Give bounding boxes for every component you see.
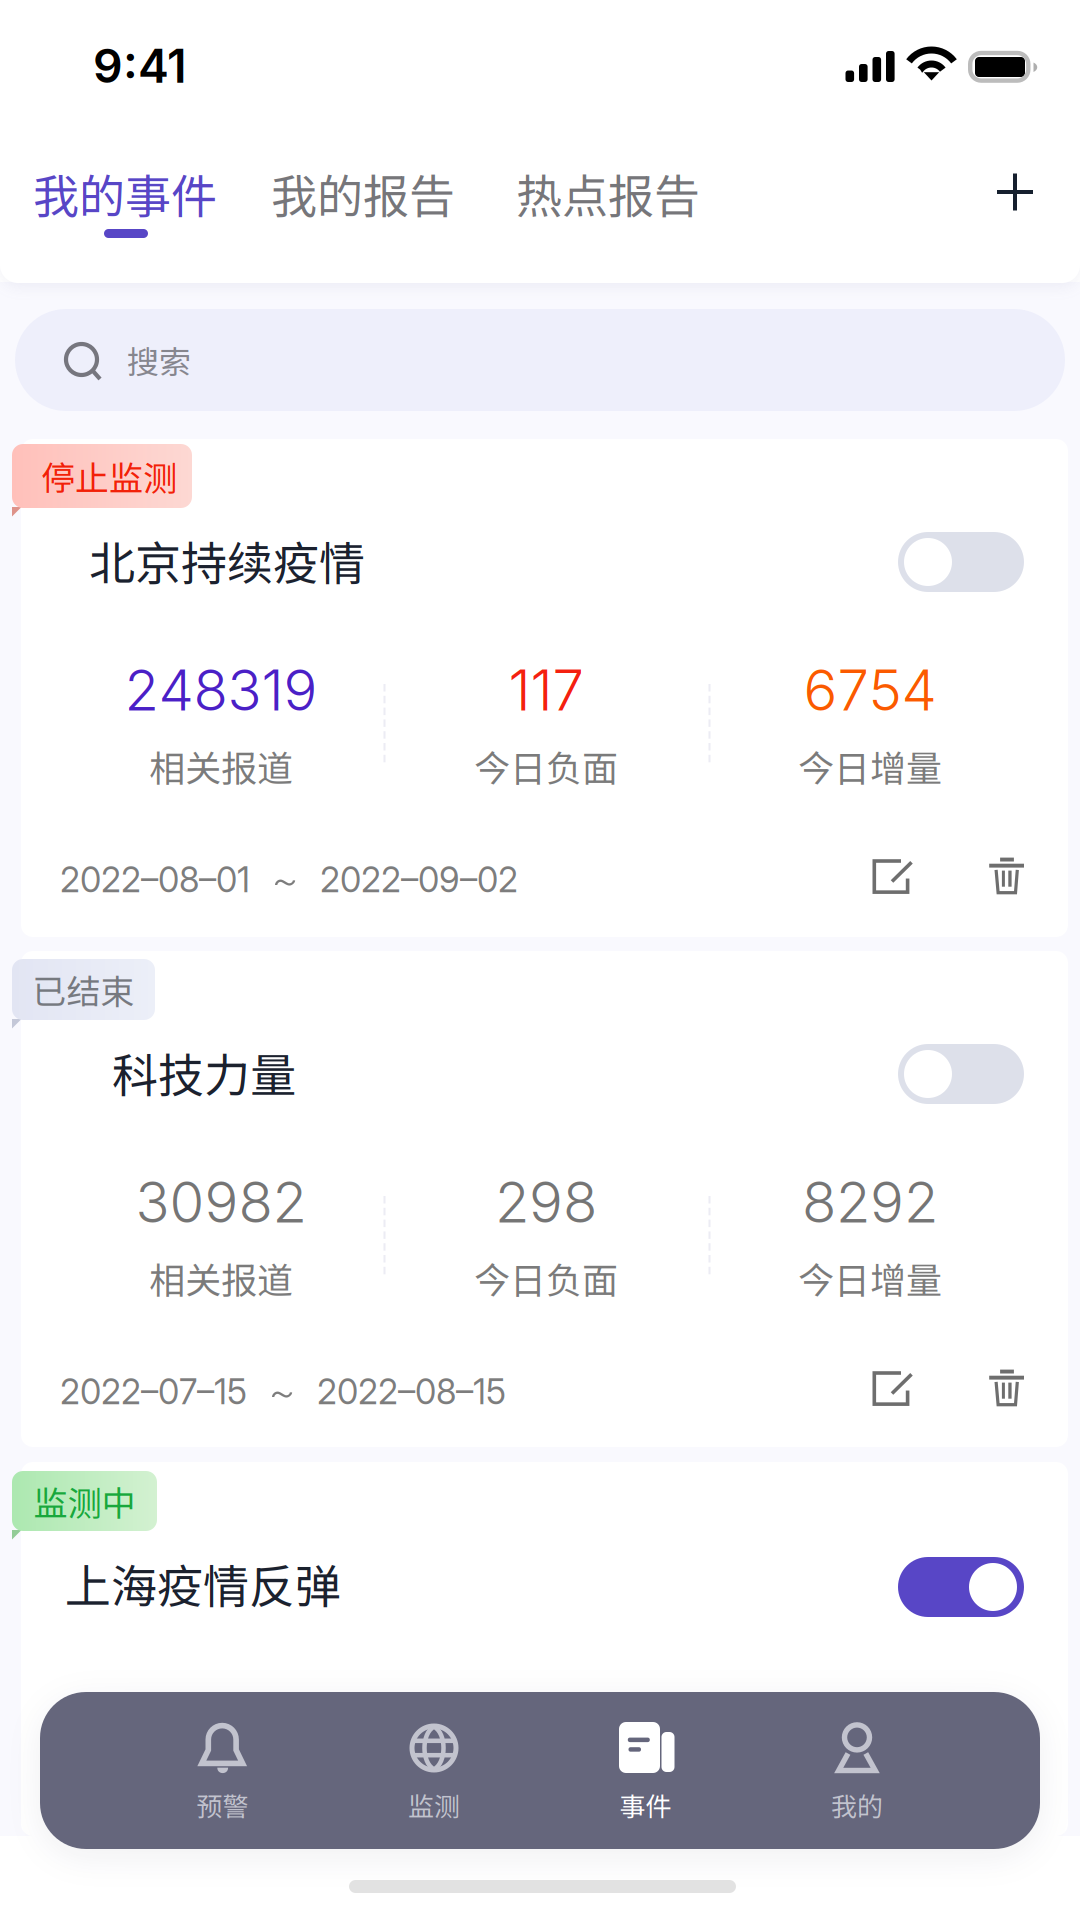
staticText: 我的 [831,1786,883,1824]
staticText: 上海疫情反弹 [65,1550,341,1617]
button[interactable]: 删除 [975,844,1037,906]
staticText: 117 [508,656,583,724]
button[interactable]: 事件 [545,1700,745,1840]
staticText: 6754 [803,656,936,724]
button[interactable]: 编辑 [860,1354,922,1416]
staticText: 预警 [196,1786,248,1824]
button[interactable]: 北京持续疫情 [21,439,1068,937]
button[interactable]: 监测 [334,1700,534,1840]
button[interactable]: 监测开关 [898,1557,1024,1617]
button[interactable]: 监测开关 [898,532,1024,592]
button[interactable]: 我的事件 [21,144,229,243]
button[interactable]: 热点报告 [504,144,712,243]
staticText: 今日增量 [798,1252,942,1304]
staticText: 9:41 [93,38,187,94]
button[interactable]: 新建 [975,152,1055,232]
staticText: 监测中 [33,1476,135,1526]
staticText: 今日负面 [474,740,618,792]
staticText: 30982 [135,1168,306,1236]
button[interactable]: 我的 [757,1700,957,1840]
button[interactable]: 编辑 [860,842,922,904]
staticText: 今日增量 [798,740,942,792]
staticText: 2022–08–01 ～ 2022–09–02 [60,859,518,902]
staticText: 事件 [619,1786,671,1824]
staticText: 8292 [802,1168,938,1236]
staticText: 相关报道 [149,740,293,792]
button[interactable]: 我的报告 [259,144,467,243]
staticText: 我的事件 [33,160,217,227]
button[interactable]: 监测开关 [898,1044,1024,1104]
staticText: 248319 [124,656,317,724]
staticText: 今日负面 [474,1252,618,1304]
staticText: 北京持续疫情 [89,527,365,594]
button[interactable]: 科技力量 [21,951,1068,1447]
staticText: 搜索 [127,337,191,383]
staticText: 我的报告 [271,160,455,227]
staticText: 热点报告 [516,160,700,227]
staticText: 停止监测 [41,451,177,501]
staticText: 298 [495,1168,597,1236]
button[interactable]: 搜索 [15,309,1065,411]
staticText: 已结束 [32,965,134,1014]
staticText: 监测 [408,1786,460,1824]
button[interactable]: 上海疫情反弹 [21,1462,1068,1836]
button[interactable]: 删除 [975,1356,1037,1418]
staticText: 2022–07–15 ～ 2022–08–15 [60,1371,506,1414]
button[interactable]: 预警 [122,1700,322,1840]
staticText: 相关报道 [149,1252,293,1304]
staticText: 科技力量 [112,1039,296,1106]
